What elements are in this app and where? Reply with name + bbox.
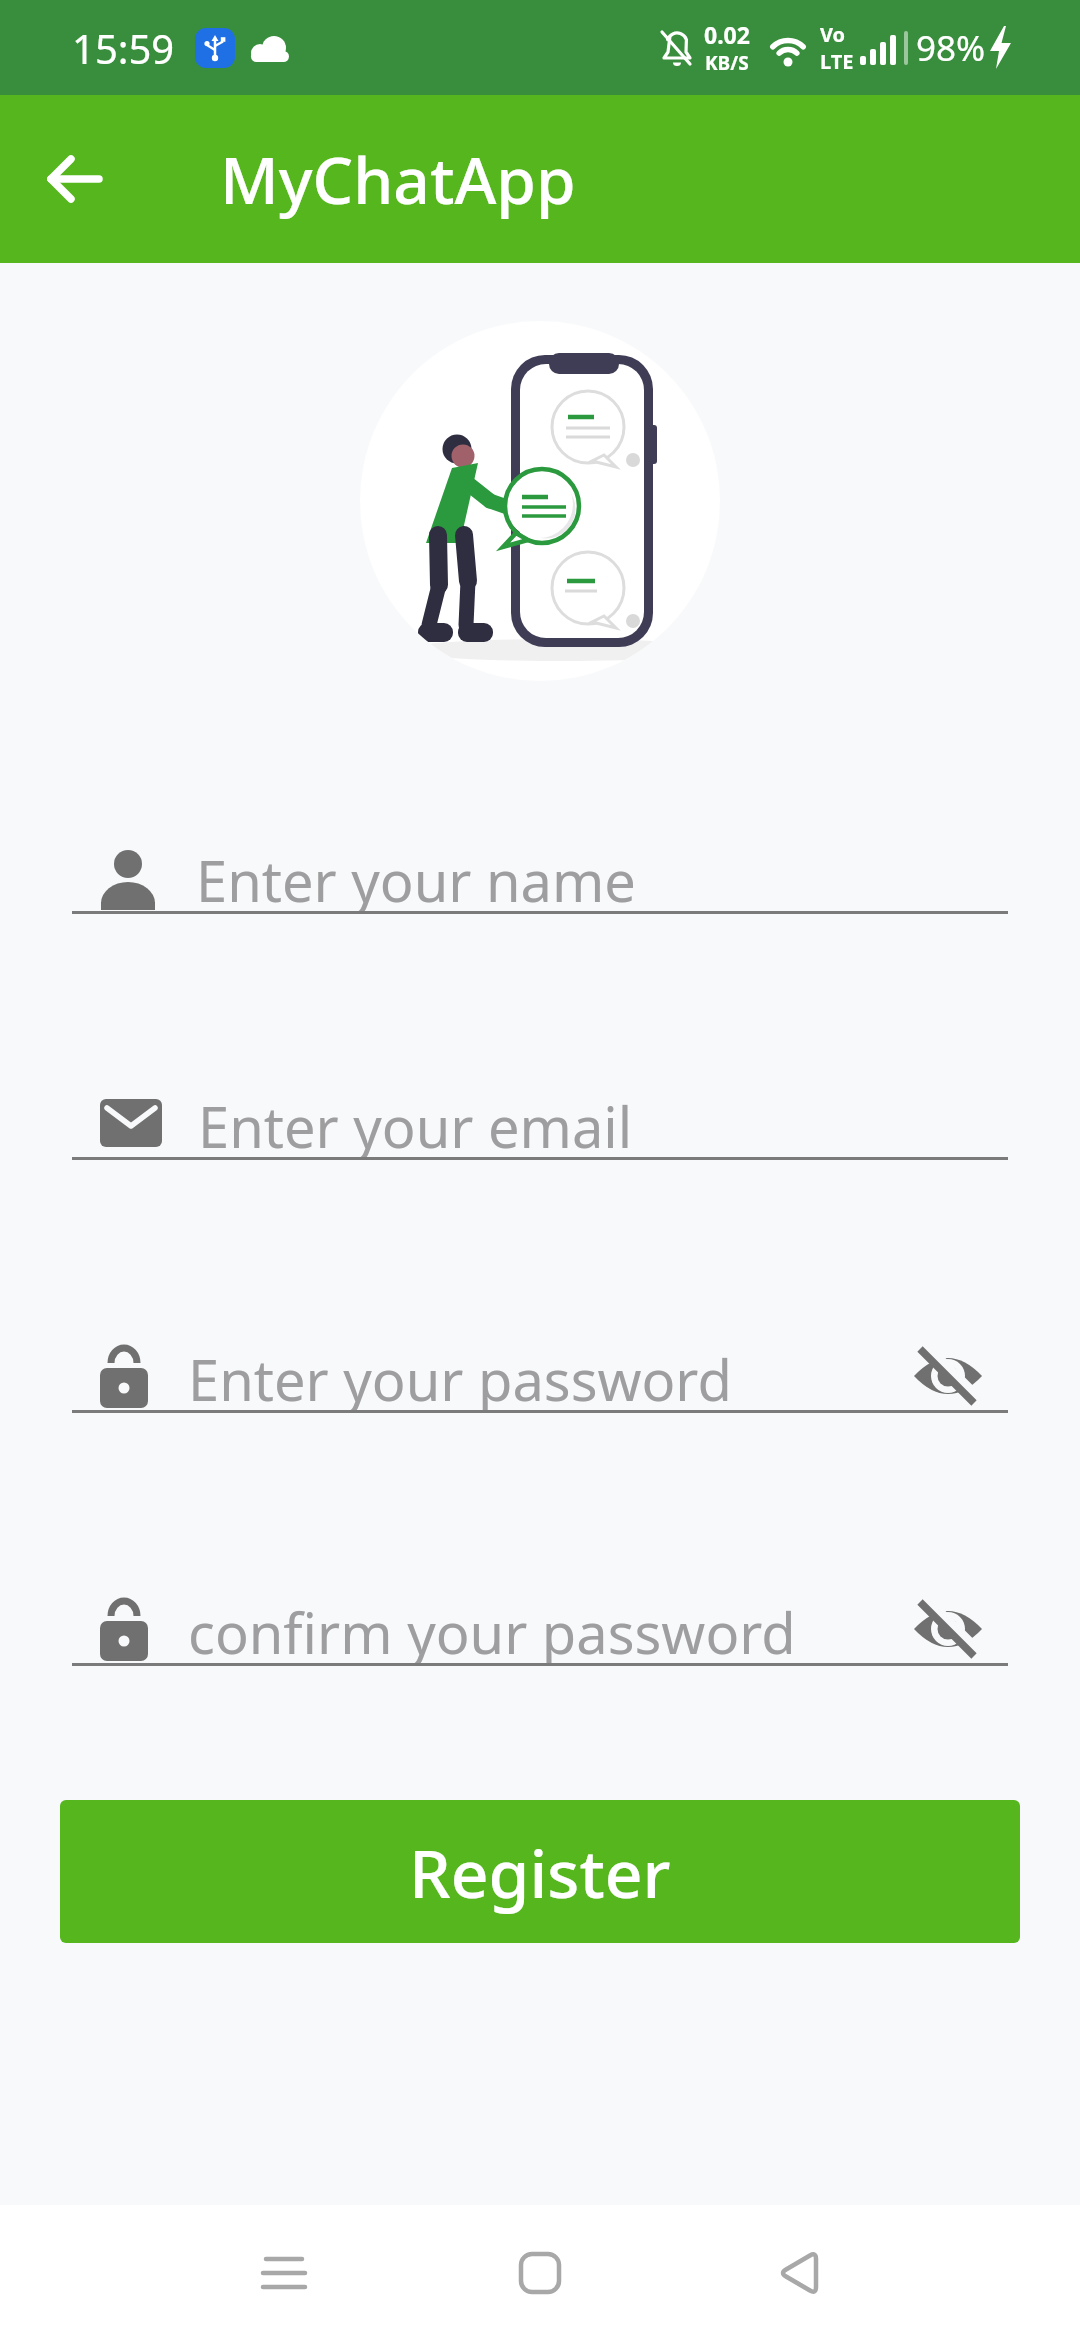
button[interactable] [743, 2218, 853, 2328]
staticText: MyChatApp [220, 136, 576, 223]
button[interactable]: Register [60, 1800, 1020, 1943]
button[interactable]: confirm your password [72, 1594, 1008, 1666]
button[interactable] [485, 2218, 595, 2328]
staticText: Enter your email [198, 1088, 633, 1157]
button[interactable] [0, 95, 150, 263]
button[interactable]: Enter your name [72, 842, 1008, 914]
staticText: confirm your password [188, 1594, 796, 1663]
button[interactable]: Enter your email [72, 1088, 1008, 1160]
button[interactable]: Enter your password [72, 1341, 1008, 1413]
staticText: 0.02 [704, 19, 750, 50]
staticText: LTE [820, 48, 854, 75]
button[interactable] [908, 1596, 988, 1662]
staticText: 98% [916, 24, 986, 72]
staticText: Register [409, 1827, 671, 1917]
staticText: Vo [820, 21, 846, 48]
button[interactable] [908, 1343, 988, 1409]
staticText: KB/S [705, 50, 749, 76]
staticText: Enter your name [196, 842, 636, 911]
staticText: 15:59 [72, 21, 175, 75]
staticText: Enter your password [188, 1341, 732, 1410]
button[interactable] [229, 2218, 339, 2328]
